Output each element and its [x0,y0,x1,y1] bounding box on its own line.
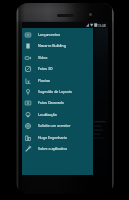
button[interactable]: Navarro Building [22,40,93,51]
staticText: Lançamentos [38,32,61,37]
staticText: 13:48 [97,23,106,28]
button[interactable]: Solicite um corretor [22,120,93,131]
staticText: Sobre o aplicativo [38,146,68,151]
button[interactable]: Sugestão de Layouts [22,86,93,97]
button[interactable]: Fotos Decorado [22,97,93,108]
button[interactable]: Plantas [22,75,93,86]
button[interactable]: Vídeo [22,52,93,63]
button[interactable]: Localização [22,109,93,120]
button[interactable]: Hugo Engenharia [22,132,93,143]
staticText: Fotos 3D [38,66,53,71]
staticText: Vídeo [38,55,48,60]
staticText: Sugestão de Layouts [38,89,72,94]
staticText: Navarro Building [38,43,66,48]
staticText: Plantas [38,78,51,83]
button[interactable]: Sobre o aplicativo [22,143,93,154]
button[interactable]: Lançamentos [22,29,93,40]
staticText: Localização [38,112,57,117]
staticText: Solicite um corretor [38,123,71,128]
button[interactable]: Fotos 3D [22,63,93,74]
staticText: Fotos Decorado [38,100,64,105]
staticText: Hugo Engenharia [38,135,67,140]
